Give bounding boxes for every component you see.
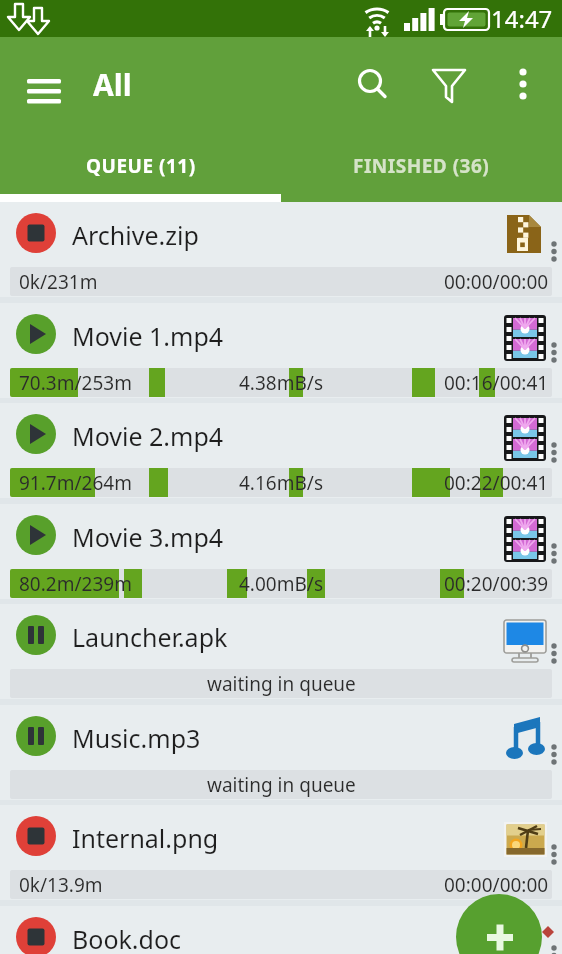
staticText: Music.mp3 — [72, 721, 201, 755]
staticText: All — [93, 64, 132, 105]
button[interactable] — [423, 58, 475, 110]
button[interactable]: Movie 1.mp4 — [0, 303, 562, 365]
staticText: 00:00/00:00 — [444, 269, 549, 295]
staticText: 91.7m/264m — [19, 470, 132, 496]
staticText: 00:20/00:39 — [444, 571, 549, 597]
button[interactable]: Music.mp3 — [0, 705, 562, 767]
staticText: 4.38mB/s — [239, 370, 323, 396]
staticText: 0k/13.9m — [19, 872, 103, 898]
button[interactable]: Internal.png — [0, 805, 562, 867]
staticText: 14:47 — [491, 2, 553, 35]
staticText: 00:16/00:41 — [444, 370, 549, 396]
staticText: Movie 1.mp4 — [72, 319, 224, 353]
button[interactable]: Movie 3.mp4 — [0, 504, 562, 566]
staticText: Movie 3.mp4 — [72, 520, 224, 554]
staticText: 0k/231m — [19, 269, 98, 295]
staticText: Book.doc — [72, 922, 182, 954]
staticText: QUEUE (11) — [86, 153, 196, 179]
staticText: Launcher.apk — [72, 620, 228, 654]
staticText: Movie 2.mp4 — [72, 419, 224, 453]
button[interactable]: Archive.zip — [0, 202, 562, 264]
staticText: 4.00mB/s — [239, 571, 323, 597]
staticText: 80.2m/239m — [19, 571, 132, 597]
staticText: Internal.png — [72, 821, 219, 855]
staticText: 00:22/00:41 — [444, 470, 549, 496]
button[interactable]: Book.doc — [0, 906, 562, 954]
staticText: waiting in queue — [207, 772, 356, 798]
button[interactable] — [497, 58, 549, 110]
staticText: 00:00/00:00 — [444, 872, 549, 898]
button[interactable] — [345, 58, 397, 110]
button[interactable]: QUEUE (11) — [0, 130, 281, 202]
staticText: FINISHED (36) — [353, 153, 490, 179]
staticText: 4.16mB/s — [239, 470, 323, 496]
staticText: Archive.zip — [72, 218, 199, 252]
button[interactable]: Launcher.apk — [0, 604, 562, 666]
button[interactable] — [456, 894, 542, 954]
button[interactable] — [16, 62, 72, 118]
button[interactable]: FINISHED (36) — [281, 130, 562, 202]
staticText: waiting in queue — [207, 671, 356, 697]
button[interactable]: Movie 2.mp4 — [0, 403, 562, 465]
staticText: 70.3m/253m — [19, 370, 132, 396]
